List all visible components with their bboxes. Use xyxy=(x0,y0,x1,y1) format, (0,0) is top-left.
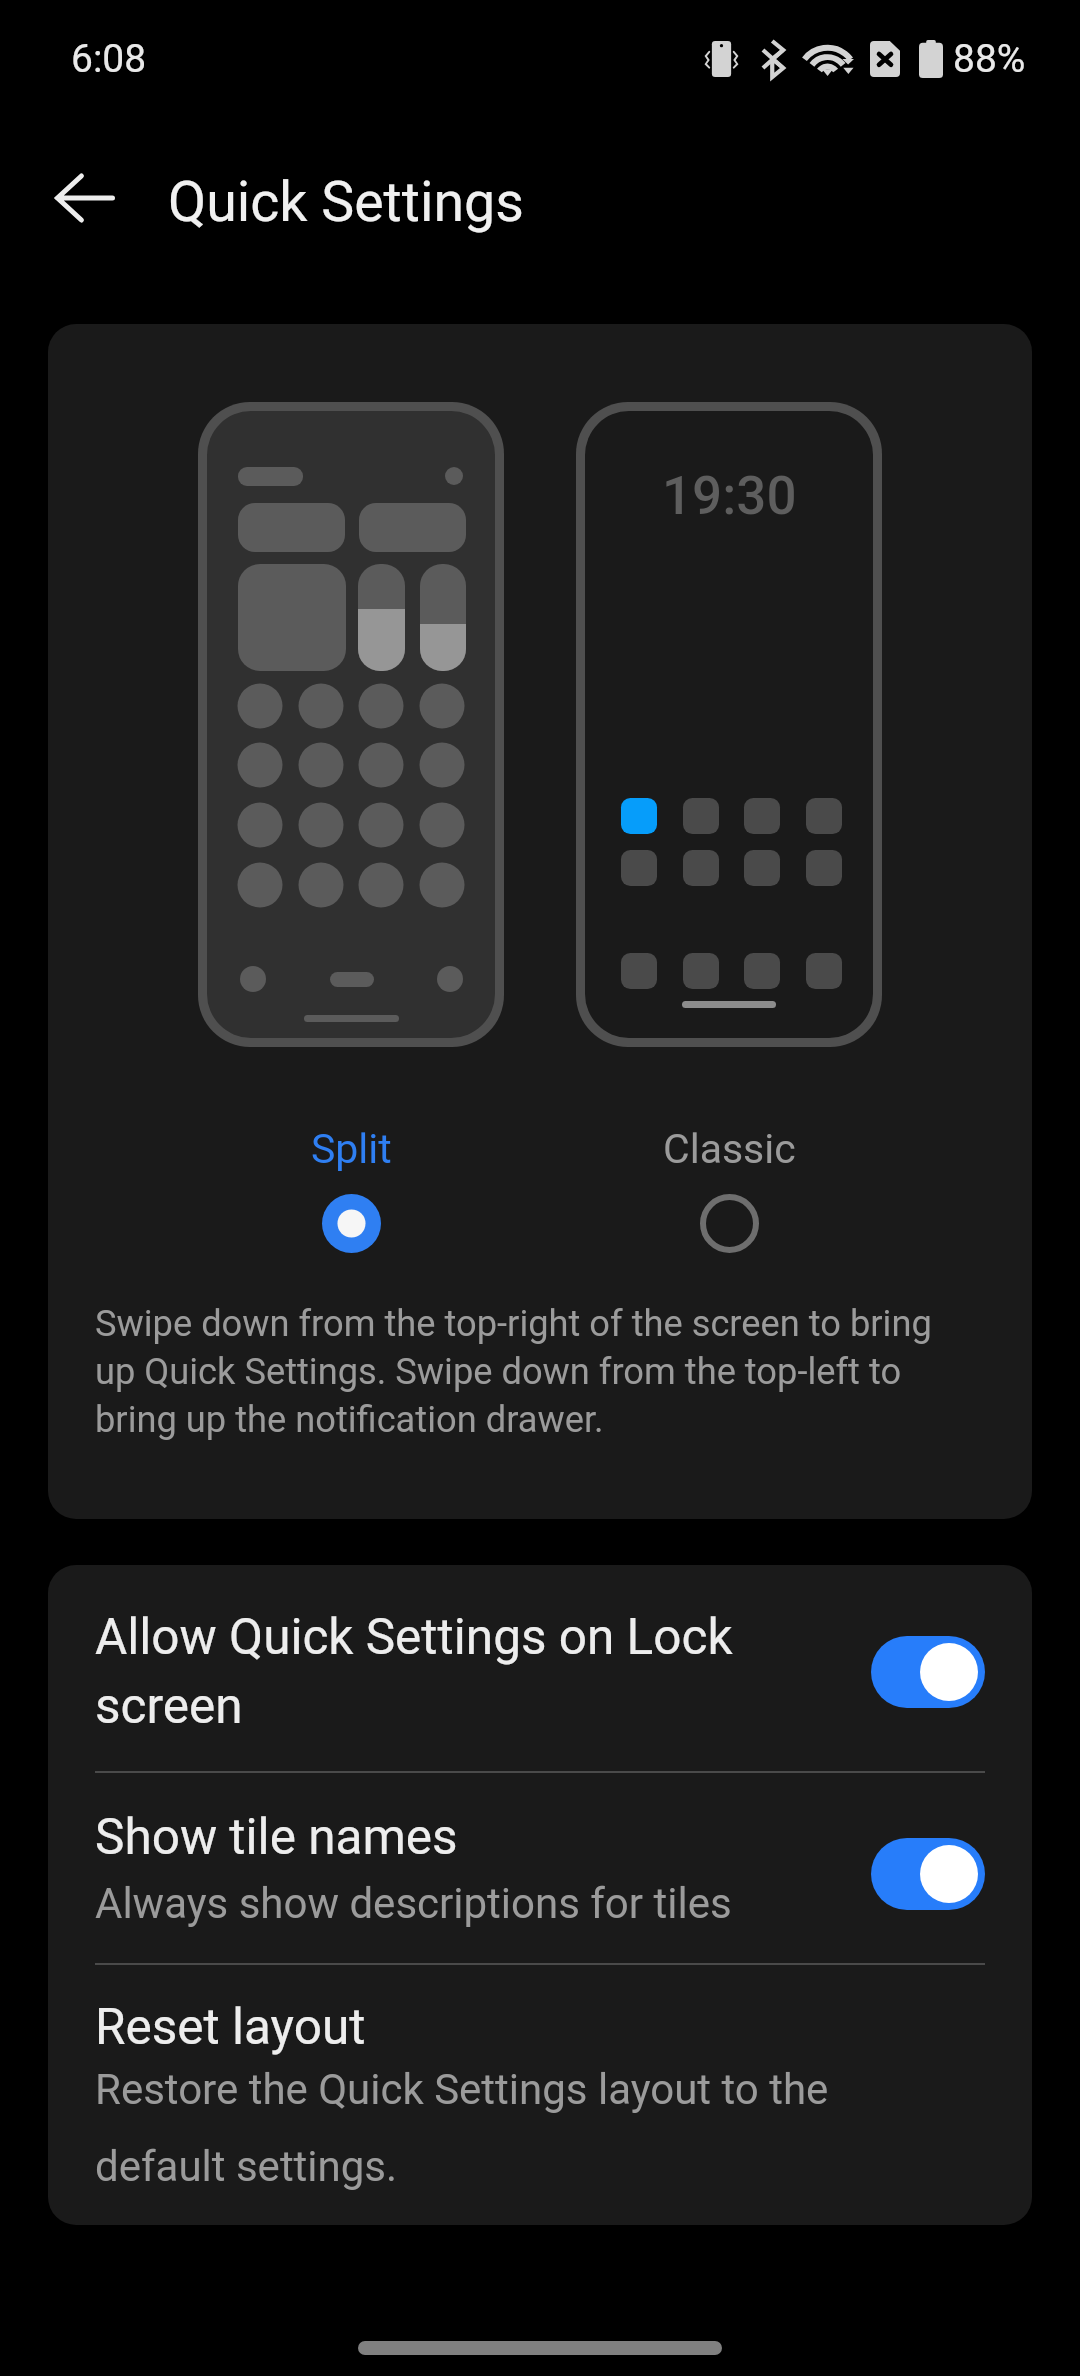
staticText: Show tile names xyxy=(95,1808,458,1866)
staticText: 19:30 xyxy=(662,465,797,527)
button[interactable]: Allow Quick Settings on Lock screen xyxy=(48,1565,1032,1771)
staticText: 88% xyxy=(953,36,1026,82)
button[interactable]: Classic xyxy=(576,1125,882,1253)
button[interactable]: Show tile names xyxy=(48,1773,1032,1963)
staticText: Restore the Quick Settings layout to the… xyxy=(95,2065,895,2191)
staticText: Quick Settings xyxy=(168,170,524,235)
button[interactable]: Back xyxy=(25,138,145,258)
button[interactable]: Split xyxy=(198,1125,504,1253)
staticText: Always show descriptions for tiles xyxy=(95,1879,732,1928)
staticText: Allow Quick Settings on Lock screen xyxy=(95,1608,795,1735)
staticText: 6:08 xyxy=(71,36,147,82)
staticText: Classic xyxy=(663,1125,796,1173)
staticText: Swipe down from the top-right of the scr… xyxy=(95,1302,965,1440)
button[interactable]: Reset layout xyxy=(48,1965,1032,2225)
staticText: Split xyxy=(311,1125,392,1173)
staticText: Reset layout xyxy=(95,1998,366,2056)
button[interactable]: Allow Quick Settings on Lock screen xyxy=(871,1636,985,1708)
button[interactable]: Show tile names xyxy=(871,1838,985,1910)
